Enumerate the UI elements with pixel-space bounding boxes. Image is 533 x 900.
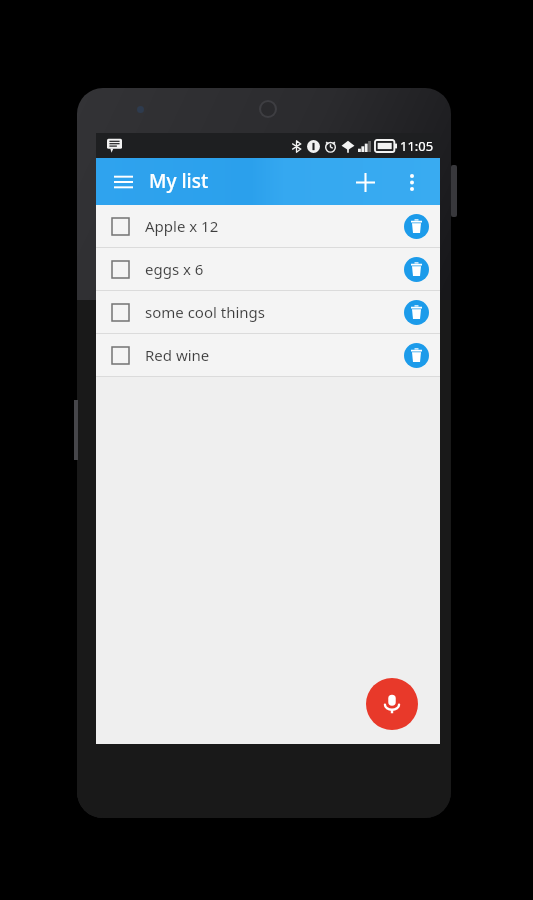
button[interactable]: Toggle Red wine <box>105 340 135 370</box>
staticText: 11:05 <box>400 137 434 155</box>
button[interactable]: Voice input <box>366 678 418 730</box>
staticText: some cool things <box>145 302 266 322</box>
button[interactable]: Toggle Apple x 12 <box>105 211 135 241</box>
button[interactable]: Delete eggs x 6 <box>400 253 432 285</box>
button[interactable]: Delete Apple x 12 <box>400 210 432 242</box>
button[interactable]: Open navigation drawer <box>104 163 142 201</box>
button[interactable]: Toggle Red wine <box>96 334 440 376</box>
button[interactable]: Toggle some cool things <box>96 291 440 333</box>
button[interactable]: Toggle some cool things <box>105 297 135 327</box>
button[interactable]: Delete some cool things <box>400 296 432 328</box>
staticText: Red wine <box>145 345 210 365</box>
button[interactable]: More options <box>393 163 431 201</box>
staticText: Apple x 12 <box>145 216 219 236</box>
button[interactable]: Toggle eggs x 6 <box>105 254 135 284</box>
button[interactable]: Add item <box>344 161 386 203</box>
button[interactable]: Toggle Apple x 12 <box>96 205 440 247</box>
staticText: eggs x 6 <box>145 259 204 279</box>
button[interactable]: Delete Red wine <box>400 339 432 371</box>
staticText: My list <box>149 168 209 194</box>
button[interactable]: Toggle eggs x 6 <box>96 248 440 290</box>
